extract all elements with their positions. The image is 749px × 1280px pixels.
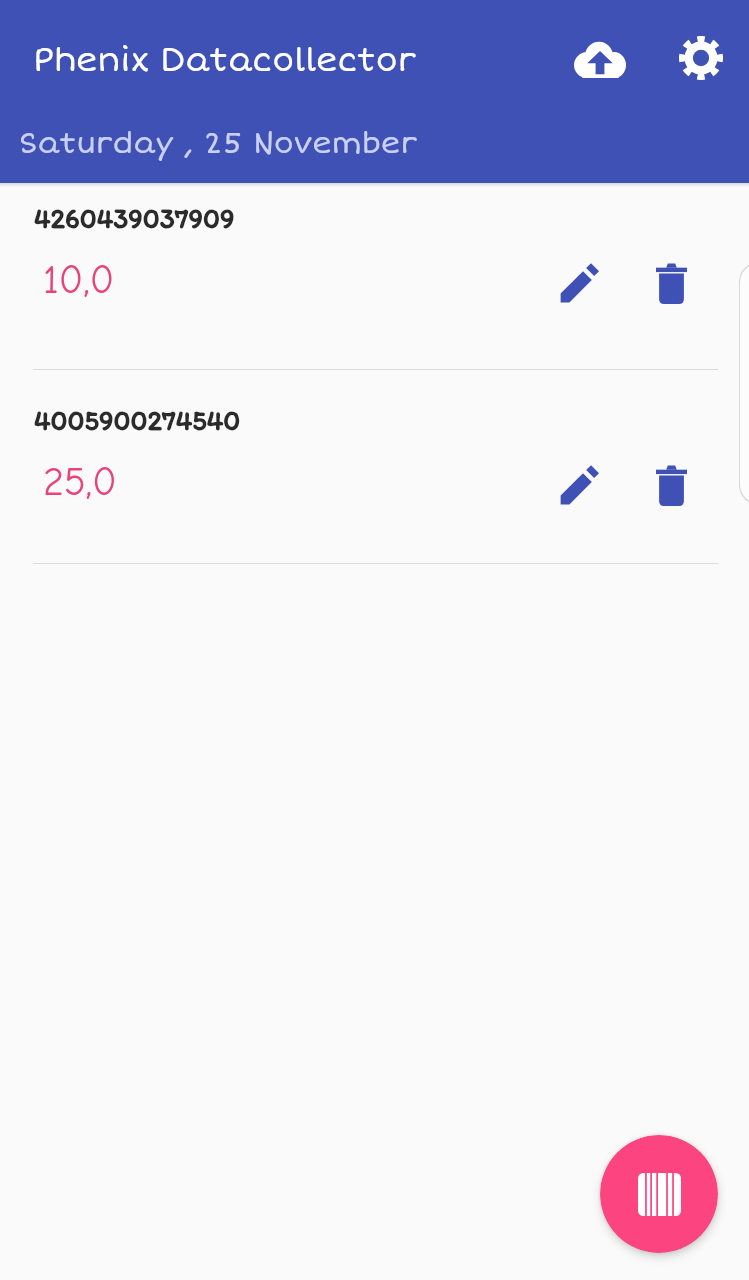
button[interactable]: 4005900274540 xyxy=(0,370,749,564)
staticText: 4260439037909 xyxy=(34,202,235,235)
button[interactable]: Delete xyxy=(640,454,702,516)
button[interactable]: Delete xyxy=(640,252,702,314)
staticText: 4005900274540 xyxy=(34,404,241,437)
button[interactable]: Edit xyxy=(548,455,610,517)
button[interactable]: Upload xyxy=(572,31,628,87)
button[interactable]: Edit xyxy=(548,253,610,315)
staticText: 25,0 xyxy=(43,459,117,505)
button[interactable]: Settings xyxy=(673,30,729,86)
button[interactable]: 4260439037909 xyxy=(0,168,749,362)
button[interactable]: Scan barcode xyxy=(600,1135,718,1253)
staticText: Phenix Datacollector xyxy=(33,41,417,81)
staticText: 10,0 xyxy=(43,257,115,303)
staticText: Saturday , 25 November xyxy=(19,125,418,161)
